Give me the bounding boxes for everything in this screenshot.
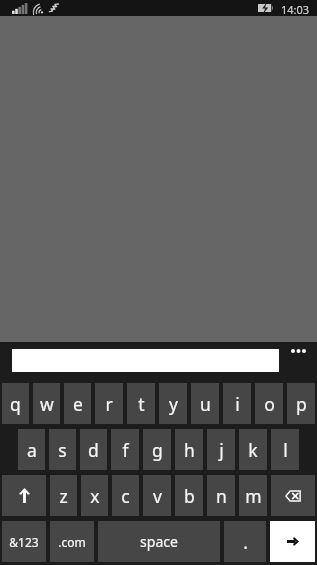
button[interactable]: &123 [2,521,46,562]
button[interactable]: Shift [2,475,46,516]
staticText: j [219,438,224,462]
staticText: r [105,392,113,416]
staticText: . [243,530,248,554]
button[interactable]: h [175,429,203,470]
staticText: space [140,532,178,551]
staticText: t [138,392,145,416]
button[interactable]: n [207,475,235,516]
staticText: &123 [9,534,39,550]
staticText: h [184,438,195,462]
button[interactable]: k [239,429,267,470]
staticText: k [248,438,258,462]
button[interactable]: t [127,383,155,424]
button[interactable]: j [207,429,235,470]
staticText: v [153,484,162,508]
staticText: a [27,438,37,462]
staticText: p [296,392,307,416]
button[interactable]: b [175,475,203,516]
button[interactable]: .com [50,521,94,562]
button[interactable]: f [111,429,139,470]
button[interactable]: u [191,383,219,424]
button[interactable]: d [80,429,107,470]
button[interactable]: Enter [270,521,315,562]
staticText: l [283,438,288,462]
staticText: z [59,484,68,508]
staticText: q [10,392,21,416]
button[interactable]: p [287,383,315,424]
button[interactable]: i [223,383,251,424]
staticText: c [121,484,130,508]
button[interactable]: w [33,383,60,424]
staticText: s [58,438,67,462]
button[interactable]: r [95,383,123,424]
staticText: d [88,438,99,462]
button[interactable]: l [271,429,299,470]
staticText: i [235,392,240,416]
button[interactable]: Backspace [271,475,315,516]
staticText: y [169,392,178,416]
staticText: w [40,392,54,416]
button[interactable]: q [2,383,29,424]
staticText: e [73,392,83,416]
button[interactable]: g [143,429,171,470]
staticText: .com [58,534,86,550]
button[interactable]: c [112,475,139,516]
button[interactable]: m [239,475,267,516]
button[interactable]: x [81,475,108,516]
button[interactable]: space [98,521,220,562]
button[interactable]: e [64,383,91,424]
button[interactable]: v [143,475,171,516]
button[interactable]: y [159,383,187,424]
button[interactable]: z [50,475,77,516]
staticText: x [90,484,100,508]
button[interactable]: . [224,521,266,562]
staticText: 14:03 [281,2,310,17]
staticText: b [184,484,195,508]
staticText: u [200,392,211,416]
button[interactable]: a [18,429,45,470]
button[interactable]: More options [284,340,312,362]
staticText: o [264,392,275,416]
staticText: g [152,438,163,462]
staticText: n [216,484,227,508]
staticText: m [245,484,262,508]
staticText: f [122,438,129,462]
button[interactable]: s [49,429,76,470]
button[interactable]: o [255,383,283,424]
